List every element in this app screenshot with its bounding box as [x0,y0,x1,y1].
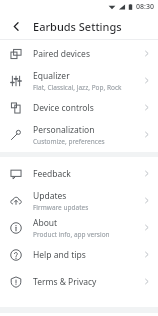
staticText: About [33,217,58,229]
button[interactable]: Updates [0,187,158,214]
button[interactable]: About [0,214,158,241]
staticText: Flat, Classical, Jazz, Pop, Rock [33,83,122,92]
staticText: Paired devices [33,48,90,60]
staticText: Personalization [33,124,95,136]
staticText: Customize, preferences [33,137,105,146]
staticText: Earbuds Settings [33,19,122,34]
button[interactable]: Terms & Privacy [0,268,158,295]
button[interactable]: Help and tips [0,241,158,268]
button[interactable]: Equalizer [0,67,158,94]
staticText: Product info, app version [33,230,110,239]
button[interactable]: Feedback [0,160,158,187]
staticText: Feedback [33,168,71,180]
staticText: 08:30 [136,2,154,12]
button[interactable]: Device controls [0,94,158,121]
staticText: Device controls [33,102,94,114]
staticText: Firmware updates [33,203,89,212]
staticText: Equalizer [33,70,70,82]
button[interactable]: Paired devices [0,40,158,67]
staticText: Updates [33,190,67,202]
button[interactable]: Personalization [0,121,158,148]
staticText: Help and tips [33,249,86,261]
staticText: Terms & Privacy [33,276,97,288]
button[interactable]: Back [5,15,27,37]
